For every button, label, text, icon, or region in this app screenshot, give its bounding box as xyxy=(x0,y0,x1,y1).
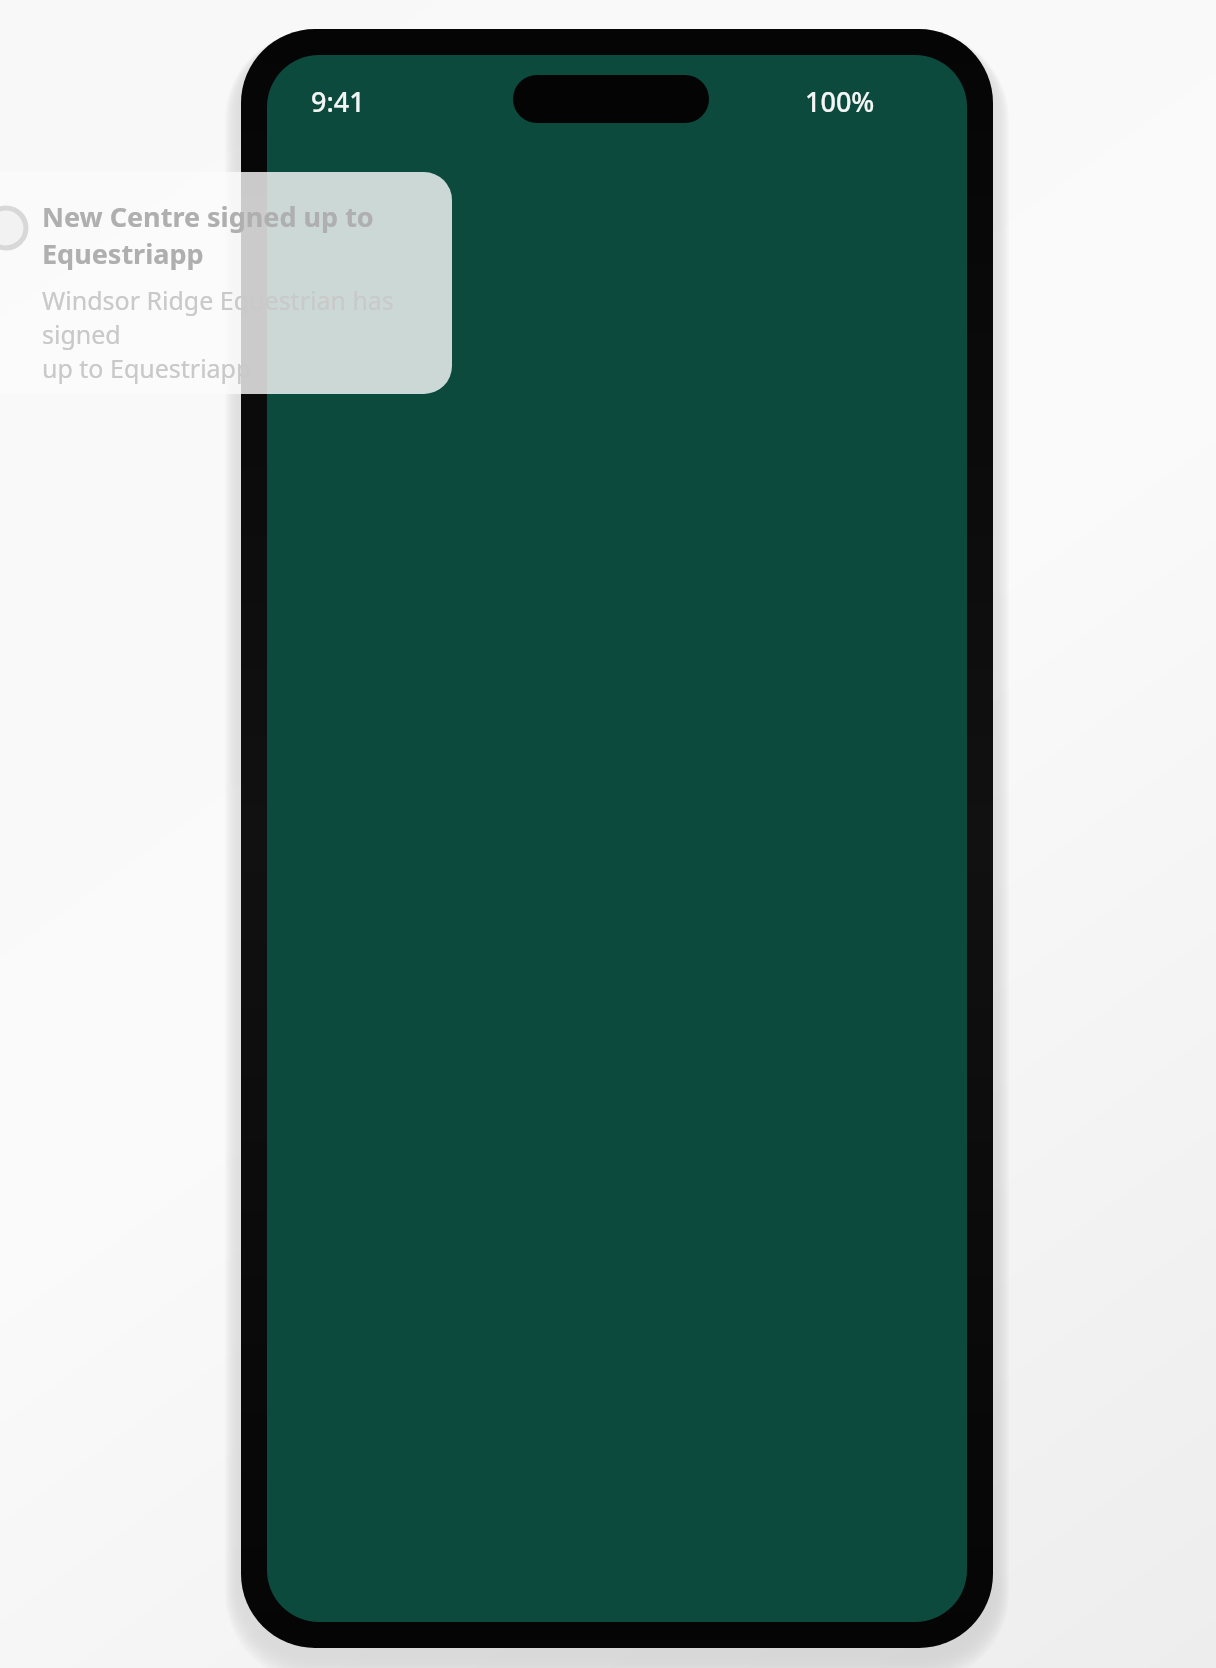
staticText: 9:41 xyxy=(311,83,365,120)
staticText: Windsor Ridge Equestrian has signed up t… xyxy=(42,283,434,385)
button[interactable]: New Centre signed up to Equestriapp noti… xyxy=(0,172,452,394)
staticText: New Centre signed up to Equestriapp xyxy=(42,198,374,272)
staticText: 100% xyxy=(805,83,875,120)
